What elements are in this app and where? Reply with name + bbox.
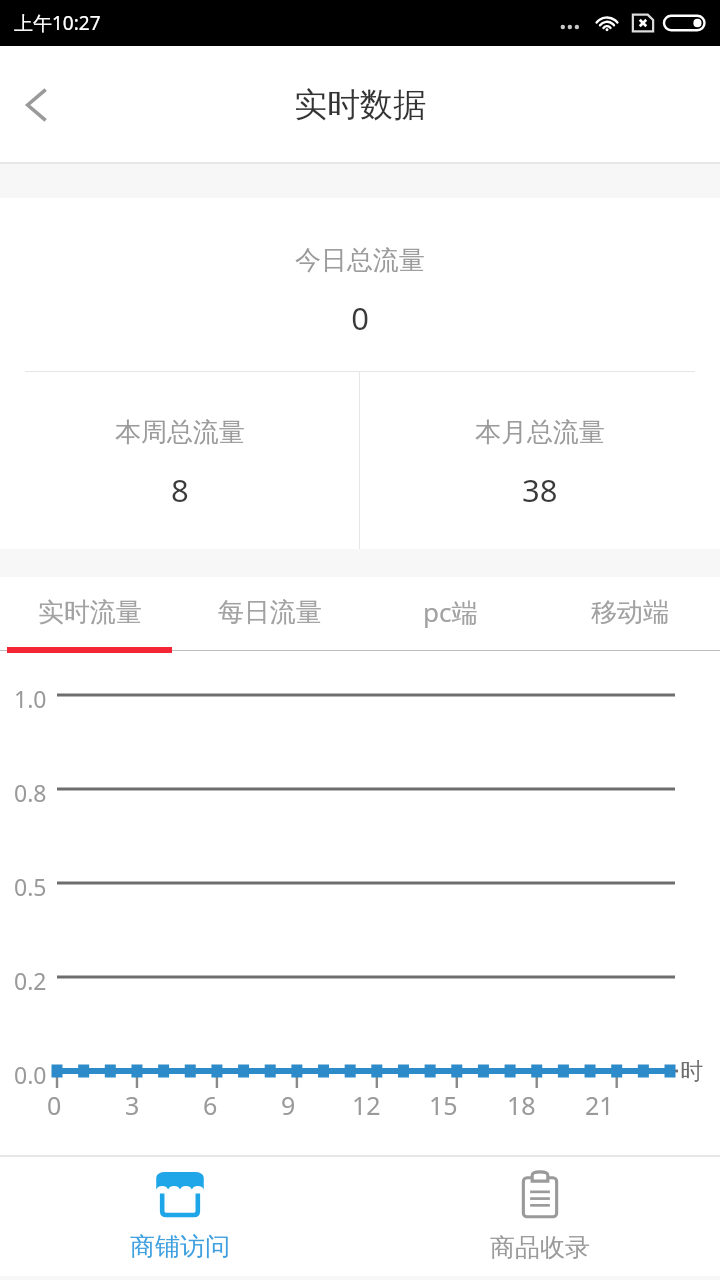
staticText: pc端	[423, 594, 478, 630]
staticText: 0.8	[14, 777, 47, 808]
staticText: 今日总流量	[0, 244, 720, 277]
staticText: 3	[125, 1088, 140, 1122]
staticText: 12	[352, 1088, 381, 1122]
staticText: 21	[585, 1088, 614, 1122]
staticText: 本周总流量	[115, 416, 245, 449]
button[interactable]: 商铺访问	[0, 1157, 360, 1276]
staticText: 实时数据	[294, 84, 426, 126]
staticText: 上午10:27	[14, 10, 101, 36]
staticText: 0.2	[14, 965, 47, 996]
staticText: 时	[680, 1057, 703, 1086]
button[interactable]: pc端	[360, 577, 540, 663]
staticText: 0.0	[14, 1059, 47, 1090]
button[interactable]: Back	[0, 68, 74, 142]
button[interactable]: 商品收录	[360, 1157, 720, 1276]
staticText: 商铺访问	[130, 1231, 230, 1262]
staticText: 15	[429, 1088, 458, 1122]
button[interactable]: 本周总流量	[0, 372, 359, 549]
staticText: 每日流量	[218, 596, 322, 629]
button[interactable]: 移动端	[540, 577, 720, 663]
staticText: 商品收录	[490, 1232, 590, 1263]
staticText: 本月总流量	[475, 416, 605, 449]
staticText: 6	[203, 1088, 218, 1122]
staticText: 0	[47, 1088, 62, 1122]
staticText: 0.5	[14, 871, 47, 902]
staticText: 8	[171, 469, 189, 511]
staticText: 0	[0, 297, 720, 339]
staticText: 9	[281, 1088, 296, 1122]
staticText: 18	[507, 1088, 536, 1122]
staticText: 实时流量	[38, 596, 142, 629]
staticText: 38	[522, 469, 558, 511]
button[interactable]: 本月总流量	[360, 372, 720, 549]
staticText: 移动端	[591, 596, 669, 629]
staticText: 1.0	[14, 683, 47, 714]
button[interactable]: 每日流量	[180, 577, 360, 663]
button[interactable]: 实时流量	[0, 577, 180, 663]
